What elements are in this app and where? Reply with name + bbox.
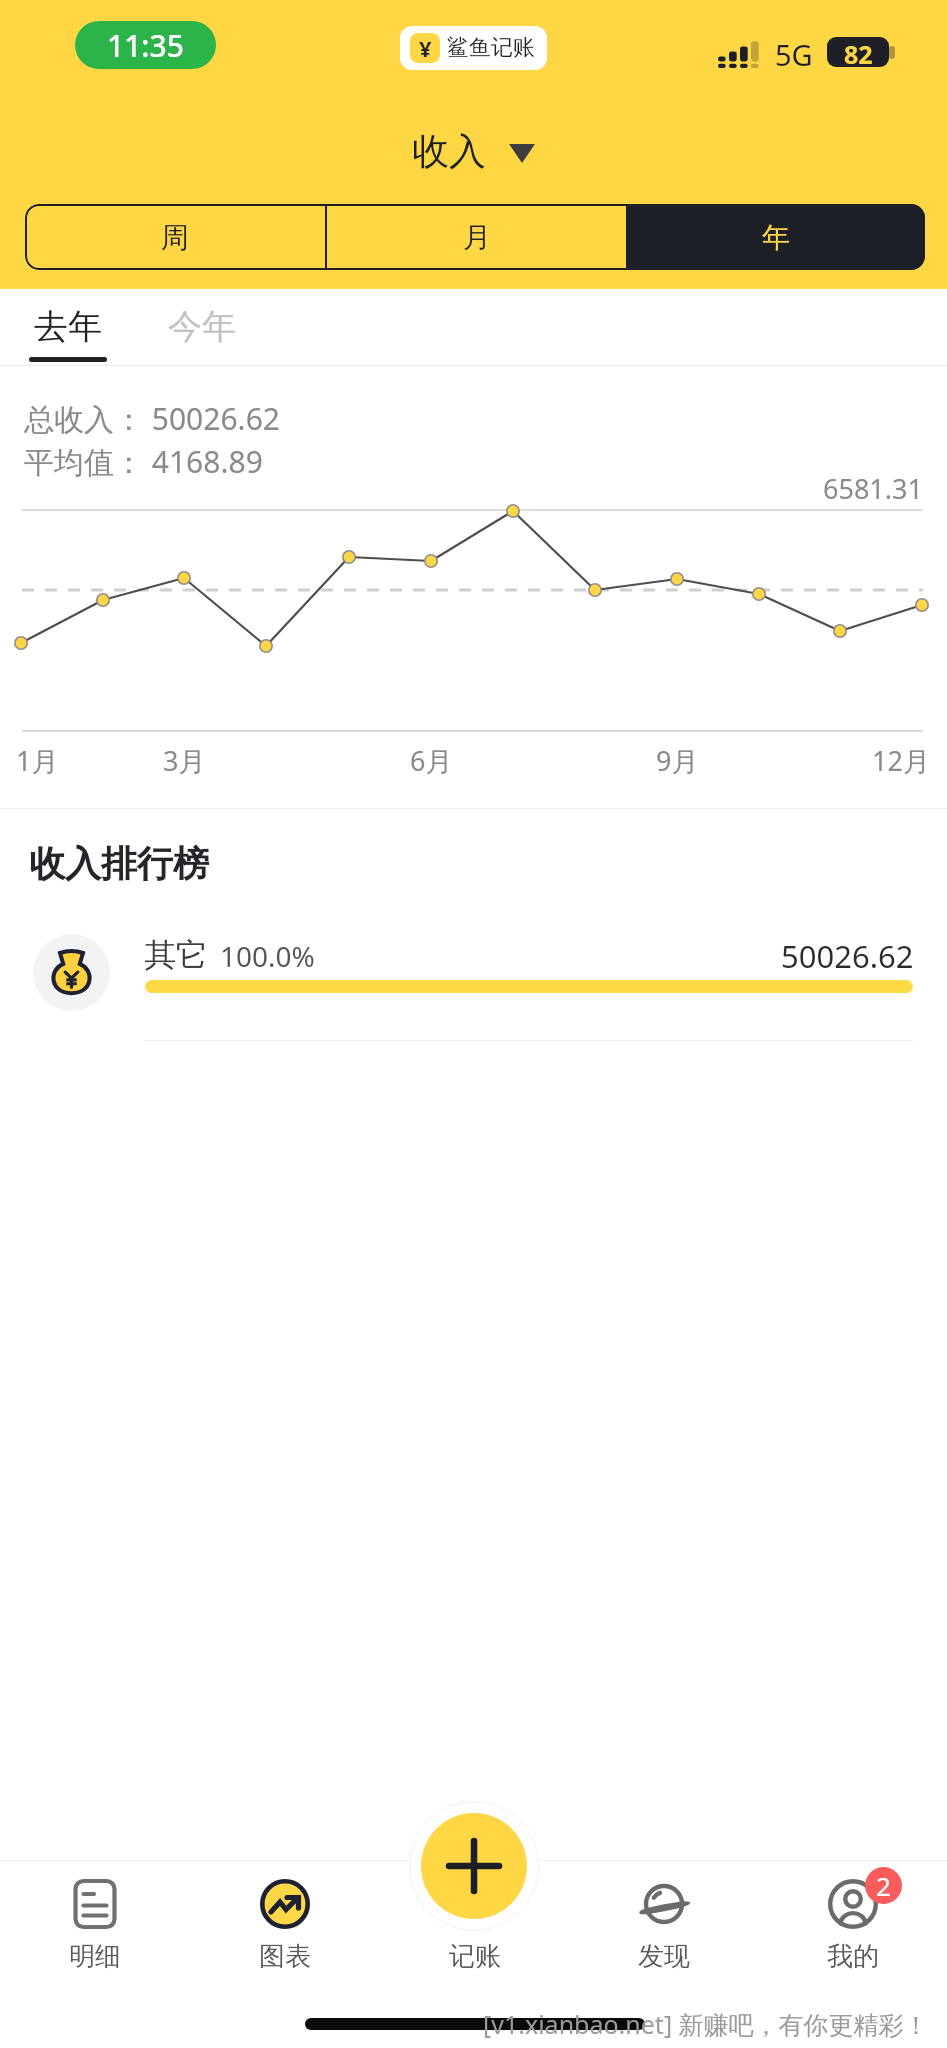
button[interactable]: 记账 bbox=[380, 1798, 569, 2048]
staticText: ¥ bbox=[419, 33, 432, 63]
staticText: 图表 bbox=[259, 1940, 311, 1973]
button[interactable]: 年 bbox=[626, 204, 925, 270]
button[interactable]: 去年 bbox=[28, 289, 108, 366]
staticText: 收入排行榜 bbox=[29, 841, 209, 886]
staticText: 6月 bbox=[410, 742, 453, 779]
staticText: 2 bbox=[876, 1868, 891, 1903]
staticText: [v1.xianbao.net] 新赚吧，有你更精彩！ bbox=[483, 2007, 929, 2041]
button[interactable]: 发现 bbox=[569, 1798, 758, 2048]
button[interactable]: 其它 bbox=[0, 930, 947, 1060]
staticText: 平均值： 4168.89 bbox=[24, 441, 263, 482]
staticText: 记账 bbox=[449, 1940, 501, 1973]
button[interactable]: 2 bbox=[758, 1798, 947, 2048]
staticText: 1月 bbox=[16, 742, 59, 779]
button[interactable]: 今年 bbox=[162, 289, 242, 366]
button[interactable]: 图表 bbox=[190, 1798, 380, 2048]
staticText: 明细 bbox=[69, 1940, 121, 1973]
staticText: 鲨鱼记账 bbox=[447, 34, 535, 62]
button[interactable]: 收入 bbox=[402, 124, 545, 179]
staticText: 3月 bbox=[163, 742, 206, 779]
staticText: 周 bbox=[161, 220, 189, 255]
staticText: 11:35 bbox=[107, 25, 184, 66]
button[interactable]: 周 bbox=[25, 204, 325, 270]
button[interactable]: 月 bbox=[327, 204, 626, 270]
staticText: 其它 bbox=[144, 935, 208, 975]
staticText: 我的 bbox=[827, 1940, 879, 1973]
staticText: 5G bbox=[775, 35, 813, 74]
button[interactable]: 明细 bbox=[0, 1798, 190, 2048]
staticText: 9月 bbox=[656, 742, 699, 779]
staticText: 月 bbox=[463, 220, 491, 255]
staticText: 82 bbox=[844, 37, 873, 67]
staticText: 收入 bbox=[412, 128, 486, 175]
staticText: 年 bbox=[762, 220, 790, 255]
staticText: 总收入： 50026.62 bbox=[24, 398, 280, 439]
staticText: 6581.31 bbox=[823, 470, 923, 507]
button[interactable]: 记账 bbox=[421, 1813, 527, 1919]
staticText: 100.0% bbox=[220, 937, 315, 975]
staticText: 12月 bbox=[872, 742, 930, 779]
staticText: 去年 bbox=[34, 305, 102, 348]
staticText: 50026.62 bbox=[781, 935, 914, 977]
staticText: 今年 bbox=[168, 305, 236, 348]
staticText: 发现 bbox=[638, 1940, 690, 1973]
